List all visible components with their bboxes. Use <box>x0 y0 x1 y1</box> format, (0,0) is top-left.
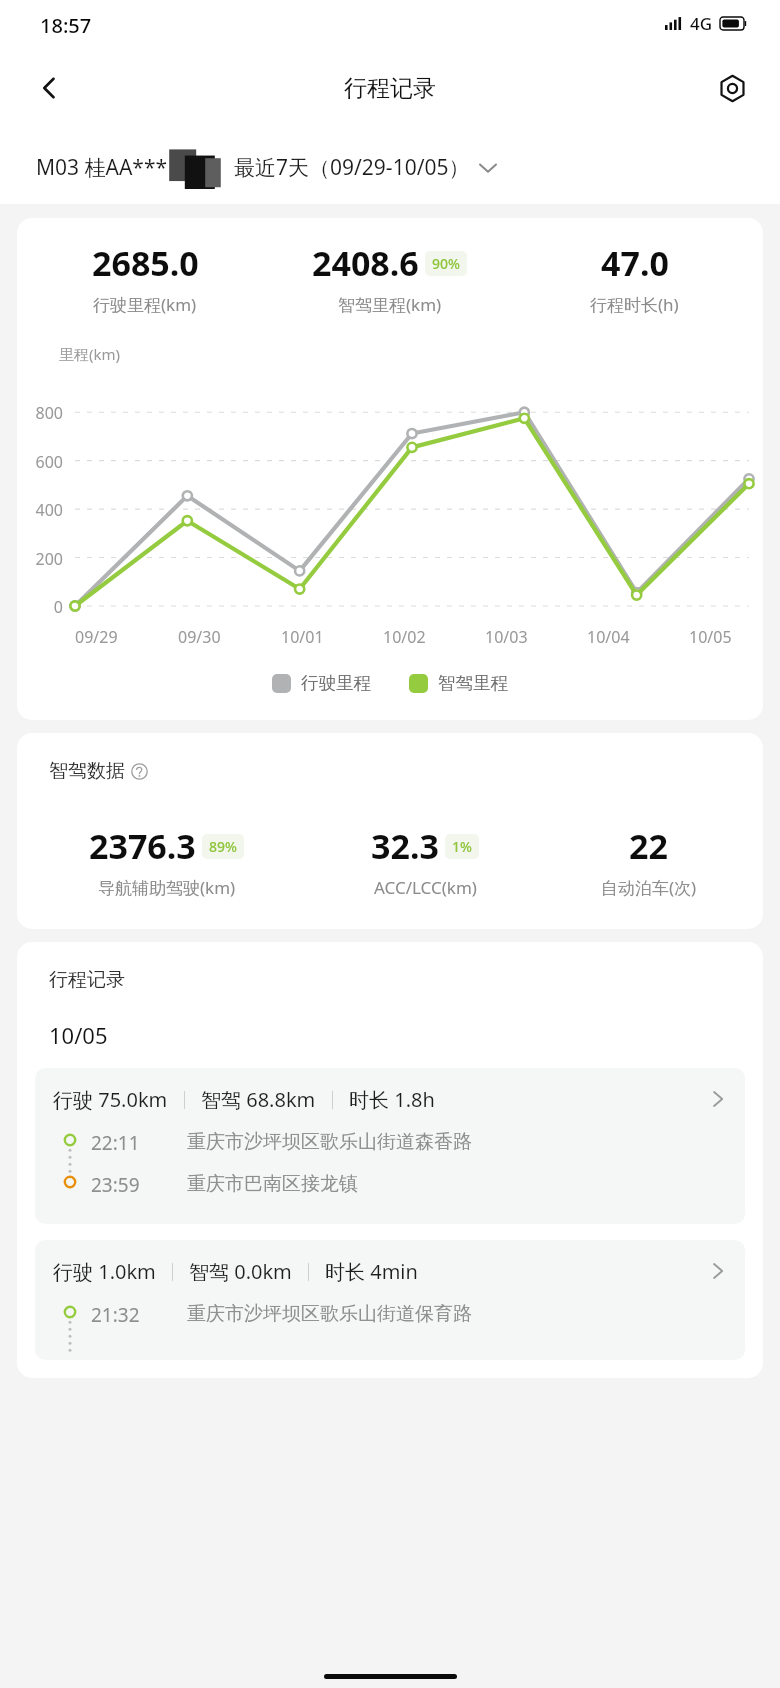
staticText: 2408.6 <box>312 240 419 286</box>
staticText: 18:57 <box>40 12 92 39</box>
staticText: 智驾数据 <box>49 759 125 783</box>
staticText: 行程记录 <box>344 74 436 103</box>
staticText: 89% <box>209 837 237 856</box>
staticText: 21:32 <box>91 1302 169 1326</box>
button[interactable]: M03 桂AA*** <box>36 145 228 189</box>
staticText: 47.0 <box>601 240 669 286</box>
staticText: 智驾里程(km) <box>338 293 442 316</box>
staticText: 自动泊车(次) <box>601 876 697 899</box>
staticText: 1% <box>452 837 472 856</box>
staticText: 10/05 <box>49 1020 108 1050</box>
button[interactable]: 行驶 1.0km <box>35 1240 745 1360</box>
button[interactable]: 最近7天（09/29-10/05） <box>234 153 496 182</box>
staticText: 10/03 <box>485 626 528 648</box>
staticText: 导航辅助驾驶(km) <box>98 876 236 899</box>
staticText: 重庆市沙坪坝区歌乐山街道森香路 <box>187 1130 472 1154</box>
staticText: 4G <box>690 12 713 35</box>
button[interactable]: 行驶里程 <box>272 672 371 694</box>
staticText: 行驶 1.0km <box>53 1258 156 1285</box>
staticText: 10/04 <box>587 626 630 648</box>
staticText: 最近7天（09/29-10/05） <box>234 153 470 182</box>
button[interactable]: 智驾数据 <box>49 759 148 783</box>
staticText: 行驶里程(km) <box>93 293 197 316</box>
button[interactable]: 行驶 75.0km <box>35 1068 745 1224</box>
staticText: 2376.3 <box>89 823 196 869</box>
staticText: 2685.0 <box>92 240 199 286</box>
staticText: 90% <box>432 254 460 273</box>
staticText: 10/01 <box>281 626 324 648</box>
button[interactable]: 智驾里程 <box>409 672 508 694</box>
staticText: ACC/LCC(km) <box>374 876 477 899</box>
button[interactable]: Settings <box>706 62 758 114</box>
button[interactable]: Back <box>22 60 78 116</box>
staticText: 时长 4min <box>325 1258 418 1285</box>
staticText: 600 <box>17 451 63 473</box>
staticText: 重庆市巴南区接龙镇 <box>187 1172 358 1196</box>
staticText: 32.3 <box>371 823 439 869</box>
staticText: 智驾 68.8km <box>201 1086 316 1113</box>
staticText: 智驾里程 <box>438 672 508 694</box>
staticText: M03 桂AA*** <box>36 153 168 182</box>
staticText: 里程(km) <box>59 344 121 364</box>
staticText: 200 <box>17 548 63 570</box>
staticText: 行程时长(h) <box>590 293 679 316</box>
staticText: 行程记录 <box>49 968 125 992</box>
staticText: 10/05 <box>689 626 732 648</box>
staticText: 800 <box>17 402 63 424</box>
staticText: 行驶 75.0km <box>53 1086 168 1113</box>
staticText: 22 <box>629 823 668 869</box>
staticText: 重庆市沙坪坝区歌乐山街道保育路 <box>187 1302 472 1326</box>
staticText: 400 <box>17 499 63 521</box>
staticText: 智驾 0.0km <box>189 1258 292 1285</box>
staticText: 22:11 <box>91 1130 169 1154</box>
staticText: 09/30 <box>178 626 221 648</box>
staticText: 行驶里程 <box>301 672 371 694</box>
staticText: 23:59 <box>91 1172 169 1196</box>
staticText: 10/02 <box>383 626 426 648</box>
staticText: 0 <box>17 596 63 618</box>
staticText: 时长 1.8h <box>349 1086 435 1113</box>
staticText: 09/29 <box>75 626 118 648</box>
